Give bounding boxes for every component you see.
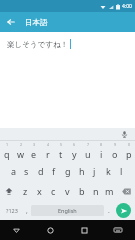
staticText: 4:00 <box>122 3 132 10</box>
button[interactable]: 3 <box>27 141 40 161</box>
button[interactable]: English <box>31 205 104 216</box>
staticText: h <box>79 165 85 177</box>
button[interactable]: f <box>47 161 60 181</box>
staticText: 日本語 <box>25 18 48 27</box>
button[interactable]: , <box>22 201 31 220</box>
staticText: , <box>26 206 28 215</box>
staticText: i <box>100 148 103 160</box>
staticText: c <box>51 185 56 197</box>
button[interactable]: Shift <box>0 181 18 201</box>
button[interactable]: Recent apps <box>67 220 101 240</box>
staticText: 9 <box>114 142 117 147</box>
staticText: j <box>93 165 96 177</box>
staticText: 3 <box>33 142 36 147</box>
button[interactable]: h <box>75 161 88 181</box>
button[interactable]: 7 <box>81 141 94 161</box>
staticText: English <box>58 207 77 214</box>
staticText: p <box>126 148 132 160</box>
staticText: 8 <box>100 142 103 147</box>
button[interactable]: 8 <box>95 141 108 161</box>
staticText: y <box>72 148 77 160</box>
staticText: 2 <box>20 142 23 147</box>
button[interactable]: Home <box>33 220 67 240</box>
staticText: l <box>120 165 123 177</box>
staticText: d <box>38 165 44 177</box>
button[interactable]: Backspace <box>117 181 135 201</box>
button[interactable]: x <box>33 181 46 201</box>
button[interactable]: 4 <box>41 141 54 161</box>
staticText: t <box>59 148 63 160</box>
button[interactable]: j <box>88 161 101 181</box>
button[interactable]: s <box>20 161 33 181</box>
staticText: k <box>106 165 111 177</box>
button[interactable]: d <box>34 161 47 181</box>
staticText: 0 <box>128 142 131 147</box>
staticText: ?123 <box>6 207 18 214</box>
staticText: u <box>85 148 91 160</box>
staticText: . <box>108 206 110 215</box>
button[interactable]: Back <box>0 220 33 240</box>
staticText: b <box>79 185 85 197</box>
staticText: x <box>37 185 42 197</box>
staticText: 5 <box>60 142 63 147</box>
button[interactable]: m <box>103 181 116 201</box>
staticText: 4 <box>47 142 50 147</box>
staticText: o <box>112 148 118 160</box>
staticText: q <box>4 148 10 160</box>
staticText: g <box>65 165 71 177</box>
staticText: m <box>105 185 114 197</box>
staticText: r <box>46 148 50 160</box>
button[interactable]: n <box>89 181 102 201</box>
staticText: z <box>23 185 28 197</box>
button[interactable]: Voice input <box>119 129 130 140</box>
button[interactable]: b <box>75 181 88 201</box>
staticText: f <box>52 165 56 177</box>
button[interactable]: 5 <box>54 141 67 161</box>
staticText: 7 <box>87 142 90 147</box>
button[interactable]: c <box>47 181 60 201</box>
button[interactable]: v <box>61 181 74 201</box>
button[interactable]: 6 <box>68 141 81 161</box>
button[interactable]: g <box>61 161 74 181</box>
staticText: s <box>24 165 29 177</box>
button[interactable]: 9 <box>108 141 121 161</box>
staticText: v <box>65 185 70 197</box>
button[interactable]: 1 <box>0 141 13 161</box>
button[interactable]: l <box>115 161 128 181</box>
staticText: 6 <box>73 142 76 147</box>
button[interactable]: . <box>104 201 113 220</box>
staticText: n <box>93 185 99 197</box>
staticText: e <box>31 148 37 160</box>
button[interactable]: a <box>7 161 20 181</box>
staticText: a <box>11 165 17 177</box>
button[interactable]: 2 <box>14 141 27 161</box>
staticText: 1 <box>6 142 9 147</box>
button[interactable]: Send <box>113 201 133 220</box>
button[interactable]: 0 <box>122 141 135 161</box>
button[interactable]: k <box>102 161 115 181</box>
button[interactable]: Back <box>4 15 18 29</box>
staticText: w <box>17 148 25 160</box>
button[interactable]: Switch keyboard <box>101 220 135 240</box>
button[interactable]: ?123 <box>2 201 22 220</box>
button[interactable]: z <box>19 181 32 201</box>
staticText: 楽しそうですね！ <box>7 40 69 49</box>
